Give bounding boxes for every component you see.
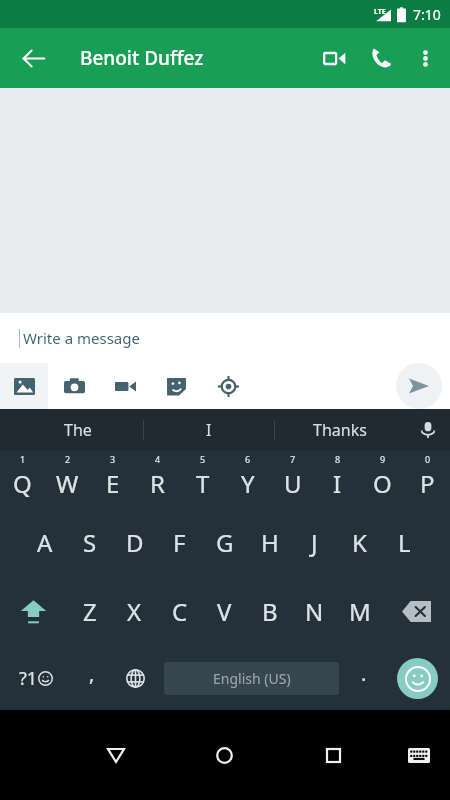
- staticText: English (US): [213, 669, 291, 688]
- button[interactable]: Voice input: [405, 409, 450, 451]
- button[interactable]: Camera: [48, 363, 100, 409]
- button[interactable]: Gallery: [0, 363, 48, 409]
- staticText: Y: [241, 467, 255, 500]
- staticText: N: [305, 595, 324, 628]
- button[interactable]: Symbols: [0, 646, 72, 710]
- staticText: T: [196, 467, 210, 500]
- button[interactable]: Video: [100, 363, 150, 409]
- button[interactable]: Video call: [310, 34, 358, 82]
- staticText: O: [373, 467, 392, 500]
- button[interactable]: I: [144, 409, 274, 451]
- staticText: B: [262, 595, 278, 628]
- staticText: Z: [83, 595, 97, 628]
- staticText: R: [150, 467, 165, 500]
- staticText: L: [398, 526, 411, 559]
- staticText: 5: [200, 453, 206, 465]
- staticText: 7:10: [413, 5, 441, 24]
- staticText: P: [420, 467, 435, 500]
- button[interactable]: ,: [72, 646, 112, 710]
- staticText: 1: [20, 453, 26, 465]
- button[interactable]: Thanks: [275, 409, 405, 451]
- button[interactable]: Hide keyboard: [388, 710, 450, 800]
- button[interactable]: Change language: [112, 646, 159, 710]
- staticText: Q: [13, 467, 32, 500]
- button[interactable]: 0: [405, 451, 450, 508]
- staticText: I: [333, 467, 342, 500]
- button[interactable]: The: [12, 409, 143, 451]
- button[interactable]: L: [382, 508, 427, 576]
- button[interactable]: 9: [360, 451, 405, 508]
- staticText: V: [217, 595, 232, 628]
- staticText: K: [352, 526, 367, 559]
- button[interactable]: M: [337, 576, 382, 646]
- button[interactable]: D: [112, 508, 157, 576]
- staticText: W: [56, 467, 79, 500]
- staticText: 9: [380, 453, 386, 465]
- button[interactable]: Home: [170, 710, 279, 800]
- staticText: 0: [425, 453, 431, 465]
- staticText: D: [126, 526, 144, 559]
- button[interactable]: J: [292, 508, 337, 576]
- button[interactable]: A: [22, 508, 67, 576]
- staticText: S: [83, 526, 97, 559]
- button[interactable]: Back: [11, 36, 55, 80]
- staticText: 3: [110, 453, 116, 465]
- staticText: 4: [155, 453, 161, 465]
- staticText: ?1: [19, 666, 38, 691]
- staticText: .: [361, 660, 367, 687]
- button[interactable]: H: [247, 508, 292, 576]
- button[interactable]: 5: [180, 451, 225, 508]
- button[interactable]: Back: [61, 710, 170, 800]
- staticText: The: [64, 419, 92, 441]
- button[interactable]: 4: [135, 451, 180, 508]
- button[interactable]: Call: [358, 35, 404, 81]
- staticText: G: [216, 526, 234, 559]
- button[interactable]: V: [202, 576, 247, 646]
- button[interactable]: Recent apps: [279, 710, 388, 800]
- button[interactable]: Sticker: [150, 363, 202, 409]
- button[interactable]: .: [344, 646, 384, 710]
- staticText: I: [206, 419, 212, 441]
- button[interactable]: X: [112, 576, 157, 646]
- button[interactable]: Location: [202, 363, 254, 409]
- button[interactable]: K: [337, 508, 382, 576]
- staticText: LTE: [374, 7, 386, 17]
- button[interactable]: Z: [67, 576, 112, 646]
- staticText: F: [173, 526, 186, 559]
- button[interactable]: 7: [270, 451, 315, 508]
- staticText: 8: [335, 453, 341, 465]
- button[interactable]: C: [157, 576, 202, 646]
- button[interactable]: 1: [0, 451, 45, 508]
- button[interactable]: F: [157, 508, 202, 576]
- staticText: 6: [245, 453, 251, 465]
- button[interactable]: 3: [90, 451, 135, 508]
- button[interactable]: N: [292, 576, 337, 646]
- button[interactable]: S: [67, 508, 112, 576]
- staticText: ,: [89, 660, 95, 687]
- button[interactable]: 8: [315, 451, 360, 508]
- button[interactable]: Shift: [0, 576, 67, 646]
- button[interactable]: English (US): [164, 662, 339, 695]
- staticText: J: [311, 526, 318, 559]
- staticText: Thanks: [313, 419, 367, 441]
- staticText: C: [172, 595, 188, 628]
- staticText: A: [37, 526, 53, 559]
- staticText: 7: [290, 453, 296, 465]
- staticText: H: [261, 526, 279, 559]
- button[interactable]: 2: [45, 451, 90, 508]
- staticText: 2: [65, 453, 71, 465]
- button[interactable]: More options: [404, 37, 446, 79]
- staticText: X: [127, 595, 142, 628]
- button[interactable]: Delete: [382, 576, 450, 646]
- staticText: U: [284, 467, 302, 500]
- staticText: E: [106, 467, 120, 500]
- button[interactable]: G: [202, 508, 247, 576]
- staticText: M: [349, 595, 371, 628]
- staticText: Benoit Duffez: [80, 45, 204, 71]
- button[interactable]: Emoji: [384, 646, 450, 710]
- staticText: Write a message: [23, 328, 140, 348]
- button[interactable]: Send: [396, 363, 442, 409]
- button[interactable]: B: [247, 576, 292, 646]
- button[interactable]: 6: [225, 451, 270, 508]
